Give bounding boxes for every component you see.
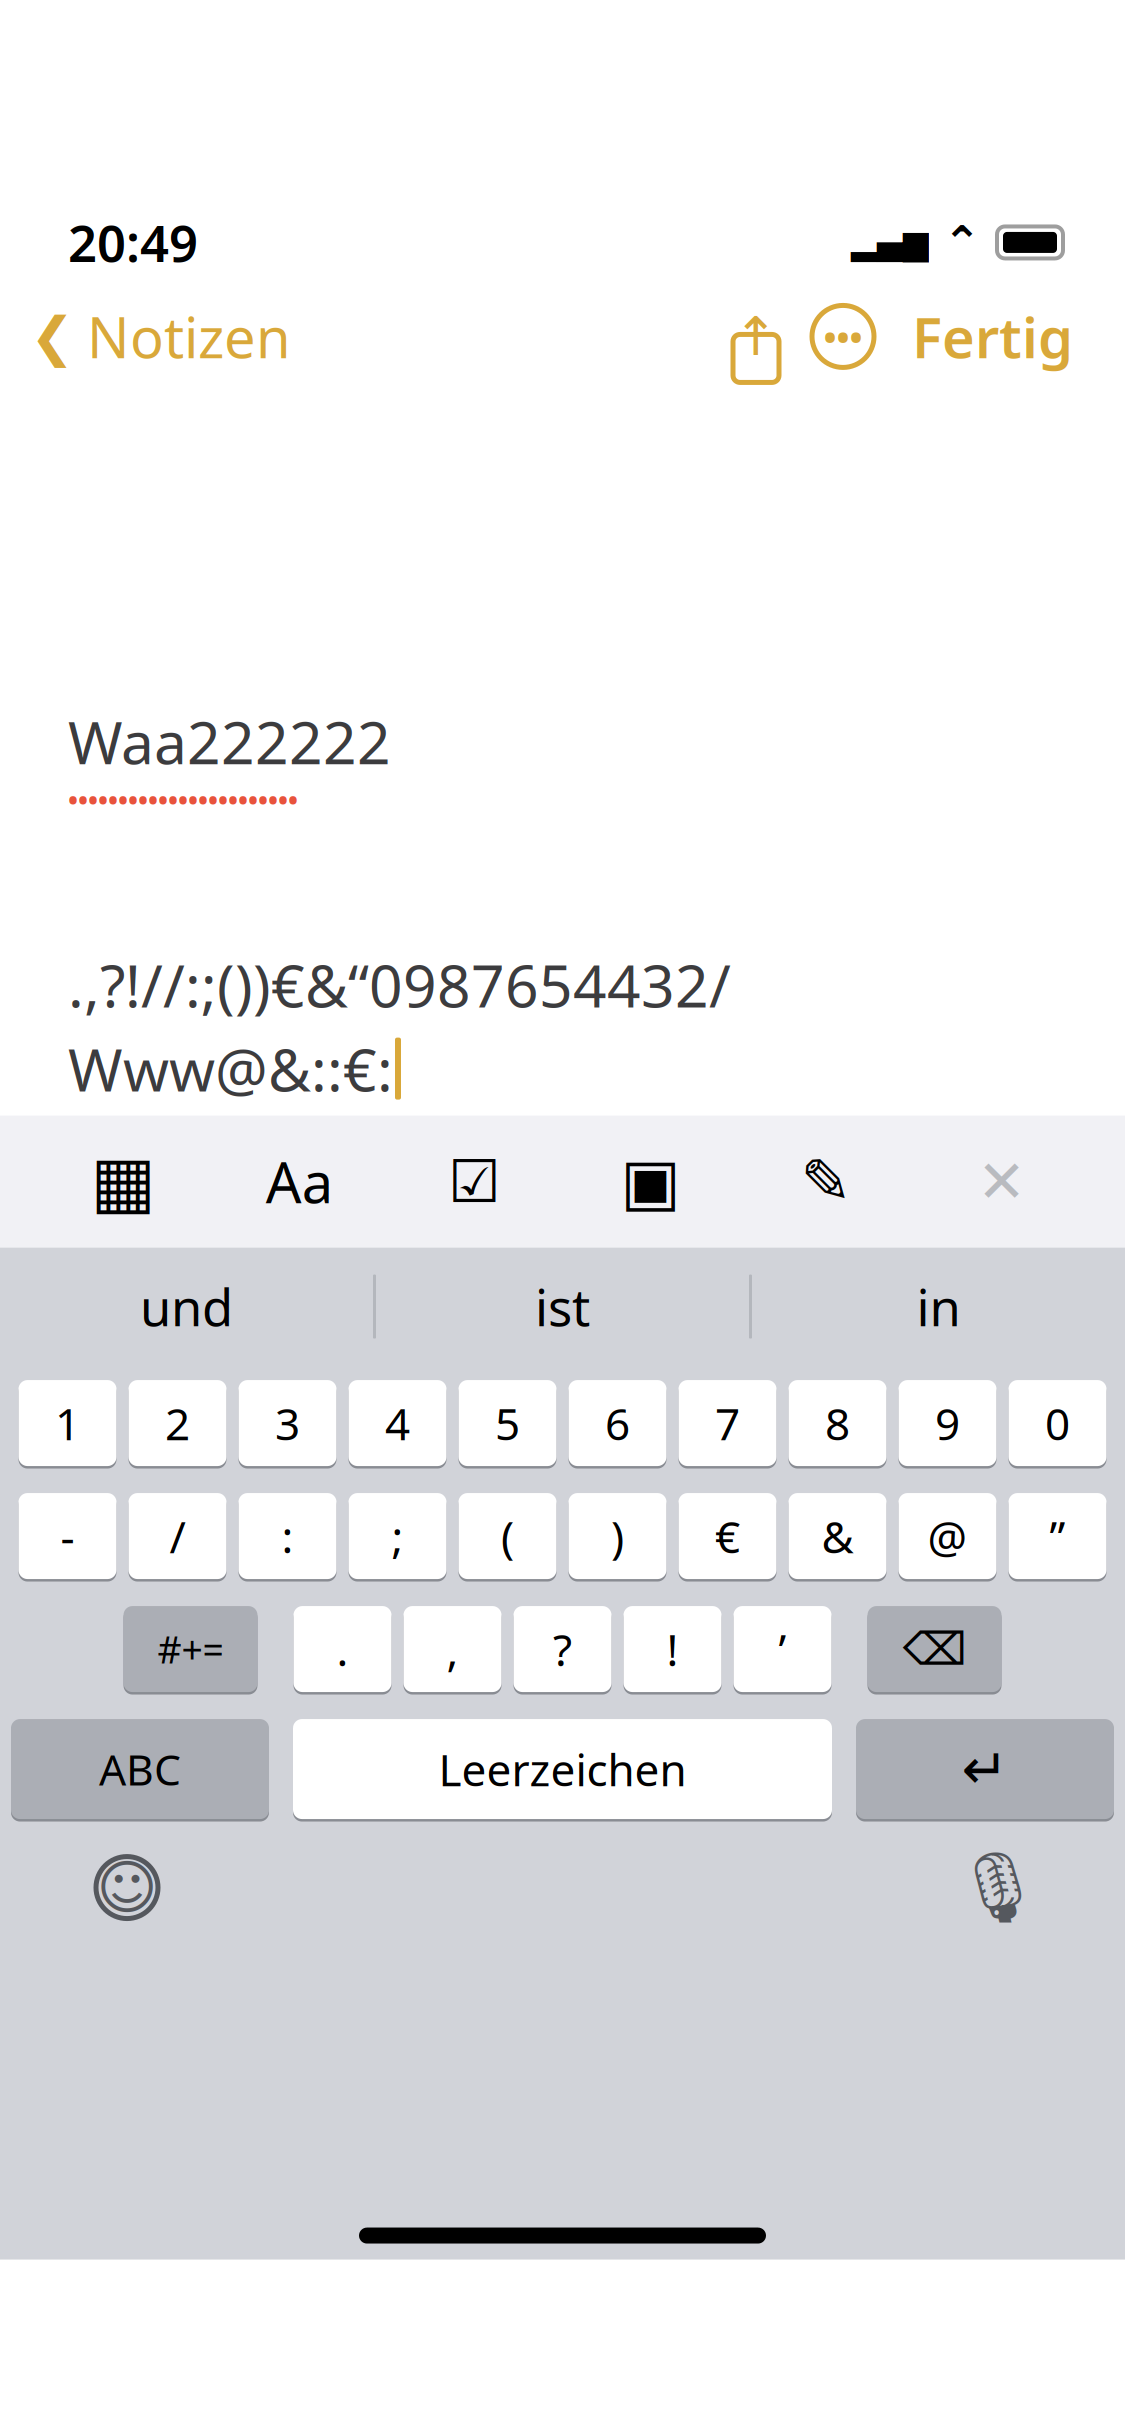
button[interactable]: ” <box>1008 1491 1106 1582</box>
staticText: in <box>916 1273 960 1340</box>
button[interactable]: 8 <box>788 1378 886 1469</box>
button[interactable]: 3 <box>238 1378 336 1469</box>
button[interactable]: Tabelle <box>72 1134 176 1230</box>
button[interactable]: Leerzeichen <box>293 1717 832 1822</box>
button[interactable]: 5 <box>458 1378 556 1469</box>
staticText: ! <box>666 1620 678 1678</box>
button[interactable]: in <box>752 1252 1125 1362</box>
button[interactable]: 2 <box>128 1378 226 1469</box>
staticText: ) <box>611 1507 624 1565</box>
button[interactable]: : <box>238 1491 336 1582</box>
button[interactable]: ❮ <box>0 287 291 386</box>
staticText: ▂▄▆ <box>851 223 929 261</box>
staticText: 3 <box>275 1394 300 1452</box>
staticText: 🎙 <box>954 1848 1042 1927</box>
button[interactable]: & <box>788 1491 886 1582</box>
button[interactable]: € <box>678 1491 776 1582</box>
staticText: ↑ <box>733 306 778 367</box>
staticText: ▦ <box>91 1142 157 1221</box>
staticText: ❮ <box>30 306 75 367</box>
button[interactable]: 0 <box>1008 1378 1106 1469</box>
button[interactable]: , <box>403 1604 501 1695</box>
staticText: ABC <box>99 1741 181 1797</box>
staticText: € <box>715 1507 740 1565</box>
button[interactable]: ’ <box>733 1604 831 1695</box>
staticText: 20:49 <box>68 209 198 276</box>
staticText: ✕ <box>977 1148 1026 1215</box>
staticText: Www@&::€: <box>68 1030 393 1108</box>
staticText: ⌃ <box>943 217 981 268</box>
button[interactable]: ( <box>458 1491 556 1582</box>
staticText: Notizen <box>87 299 291 374</box>
staticText: Waa222222 <box>68 702 391 780</box>
staticText: 8 <box>825 1394 850 1452</box>
button[interactable]: Zeilenumbruch <box>856 1717 1114 1822</box>
staticText: Aa <box>266 1144 333 1219</box>
staticText: ? <box>553 1620 572 1678</box>
button[interactable]: #+= <box>123 1604 257 1695</box>
button[interactable]: ! <box>623 1604 721 1695</box>
button[interactable]: Format <box>247 1134 351 1230</box>
staticText: ••••••••••••••••••••••• <box>68 782 298 818</box>
staticText: 0 <box>1045 1394 1070 1452</box>
staticText: ▣ <box>620 1145 680 1218</box>
staticText: ” <box>1049 1507 1065 1565</box>
staticText: .,?!//:;())€&“0987654432/ <box>68 946 731 1024</box>
button[interactable]: Diktat <box>943 1838 1053 1938</box>
staticText: 2 <box>165 1394 190 1452</box>
button[interactable]: ; <box>348 1491 446 1582</box>
button[interactable]: 1 <box>18 1378 116 1469</box>
button[interactable]: Kamera <box>598 1134 702 1230</box>
button[interactable]: ? <box>513 1604 611 1695</box>
button[interactable]: Mehr <box>796 292 890 380</box>
button[interactable]: ABC <box>11 1717 269 1822</box>
staticText: ist <box>535 1273 590 1340</box>
button[interactable]: Fertig <box>890 287 1095 386</box>
button[interactable]: Emoji <box>72 1838 182 1938</box>
staticText: #+= <box>157 1624 223 1674</box>
staticText: : <box>281 1507 293 1565</box>
staticText: ☺ <box>96 1854 157 1921</box>
staticText: ; <box>391 1507 403 1565</box>
staticText: und <box>140 1273 233 1340</box>
button[interactable]: Markierung <box>774 1134 878 1230</box>
button[interactable]: ist <box>376 1252 749 1362</box>
staticText: Fertig <box>912 299 1073 374</box>
button[interactable]: 4 <box>348 1378 446 1469</box>
button[interactable]: - <box>18 1491 116 1582</box>
button[interactable]: 7 <box>678 1378 776 1469</box>
button[interactable]: Checkliste <box>423 1134 527 1230</box>
staticText: @ <box>927 1507 967 1565</box>
staticText: & <box>821 1507 853 1565</box>
staticText: ( <box>501 1507 514 1565</box>
staticText: - <box>60 1507 74 1565</box>
button[interactable]: ) <box>568 1491 666 1582</box>
button[interactable]: 6 <box>568 1378 666 1469</box>
staticText: ••• <box>823 313 862 359</box>
staticText: / <box>169 1507 185 1565</box>
staticText: . <box>336 1620 348 1678</box>
staticText: Leerzeichen <box>438 1740 686 1798</box>
button[interactable]: Teilen <box>716 292 796 380</box>
button[interactable]: 9 <box>898 1378 996 1469</box>
button[interactable]: Löschen <box>867 1604 1001 1695</box>
staticText: 7 <box>715 1394 740 1452</box>
staticText: 6 <box>605 1394 630 1452</box>
button[interactable]: @ <box>898 1491 996 1582</box>
staticText: ⌫ <box>902 1623 966 1675</box>
staticText: 5 <box>495 1394 520 1452</box>
staticText: , <box>446 1620 458 1678</box>
button[interactable]: / <box>128 1491 226 1582</box>
button[interactable]: . <box>293 1604 391 1695</box>
staticText: ’ <box>778 1620 786 1678</box>
staticText: 4 <box>385 1394 410 1452</box>
staticText: ☑︎ <box>448 1148 501 1215</box>
staticText: ↵ <box>961 1737 1008 1801</box>
button[interactable]: und <box>0 1252 373 1362</box>
button[interactable]: Schließen <box>949 1134 1053 1230</box>
staticText: 1 <box>55 1394 80 1452</box>
staticText: 9 <box>935 1394 960 1452</box>
staticText: ✎ <box>800 1147 851 1216</box>
